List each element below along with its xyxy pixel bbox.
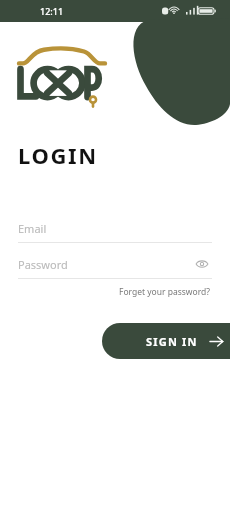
button[interactable]: Password — [18, 250, 212, 279]
button[interactable]: Email — [18, 214, 212, 243]
button[interactable]: Forget your password? — [117, 283, 212, 301]
staticText: 12:11 — [40, 5, 64, 17]
button[interactable]: SIGN IN — [102, 323, 230, 359]
staticText: SIGN IN — [146, 334, 198, 349]
staticText: LOGIN — [18, 140, 98, 170]
staticText: Password — [18, 257, 68, 272]
button[interactable]: Show password — [192, 254, 212, 274]
staticText: Forget your password? — [119, 286, 210, 298]
staticText: Email — [18, 221, 47, 236]
